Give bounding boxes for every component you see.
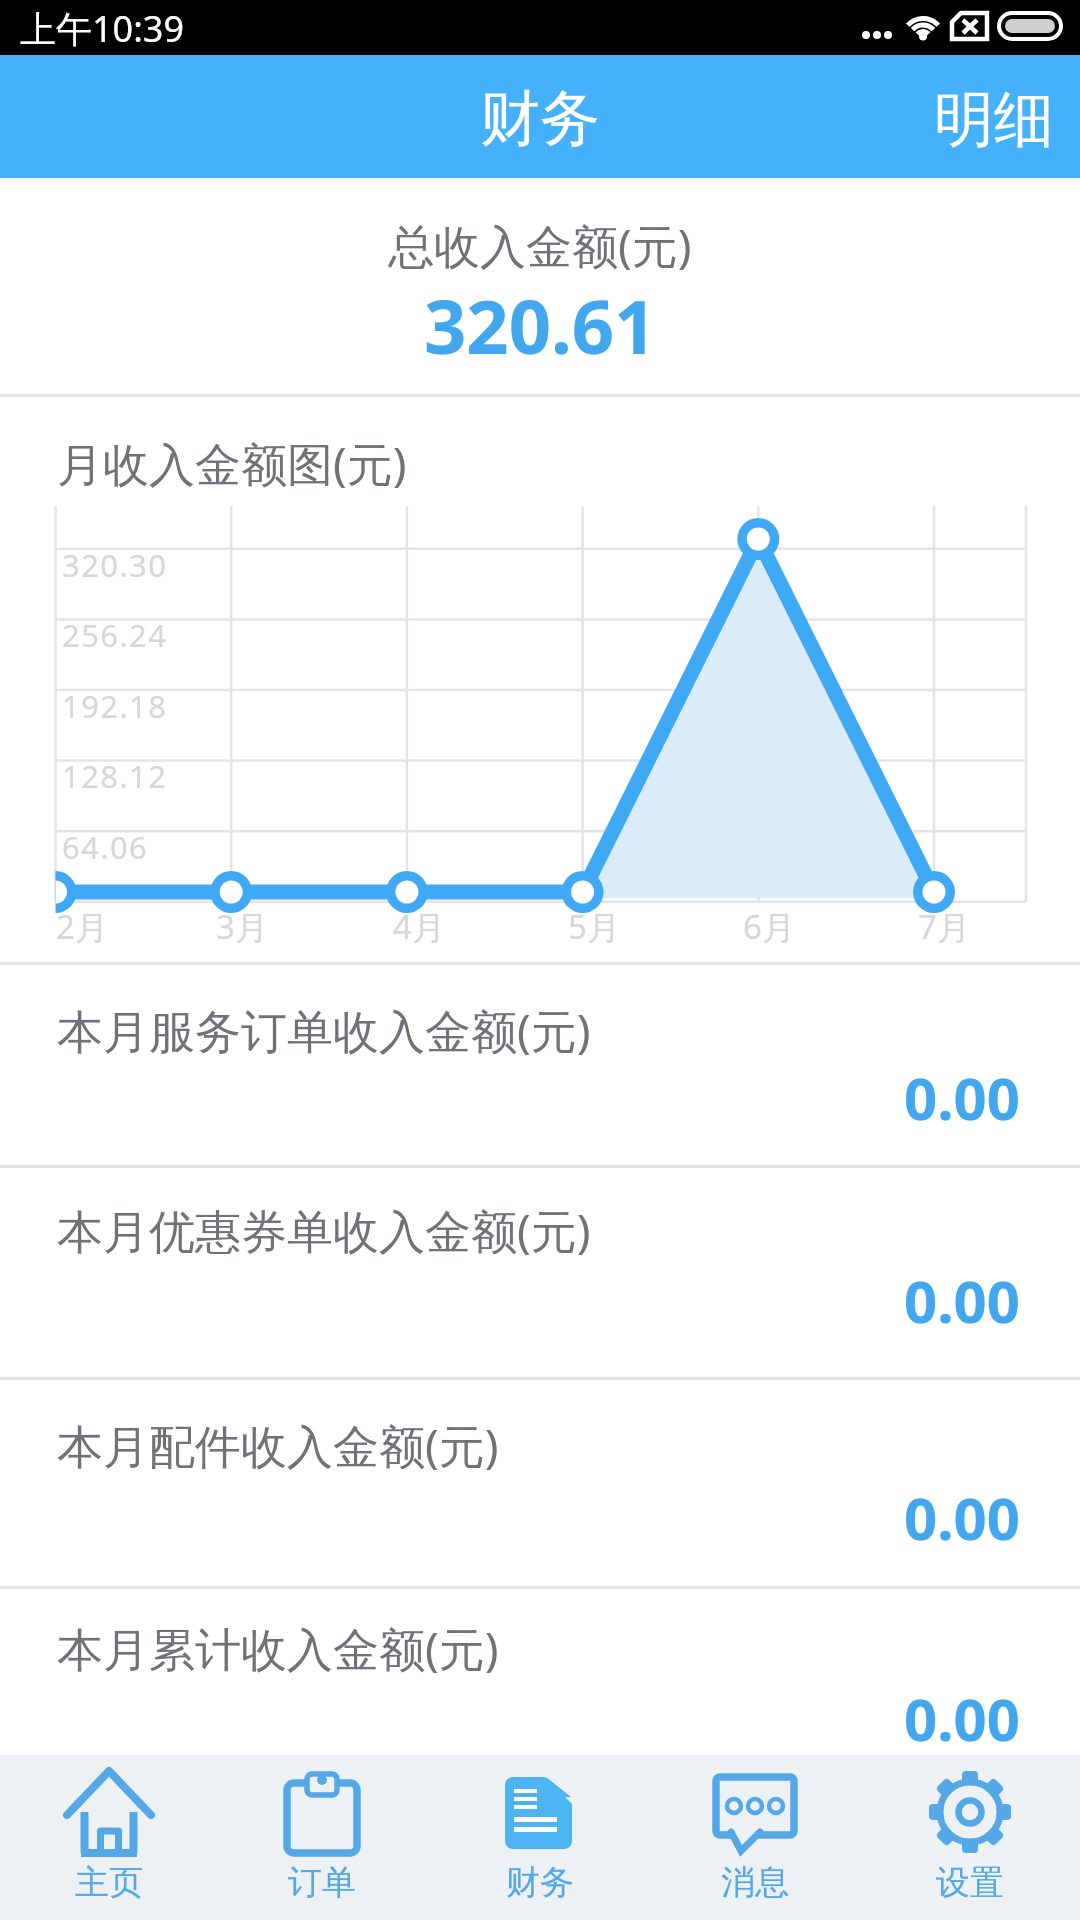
button[interactable] — [647, 1755, 863, 1920]
button[interactable] — [0, 1168, 1080, 1377]
staticText: 本月累计收入金额(元) — [57, 1617, 499, 1680]
staticText: 4月 — [393, 904, 445, 949]
staticText: 订单 — [288, 1861, 356, 1904]
staticText: 6月 — [743, 904, 795, 949]
staticText: 本月服务订单收入金额(元) — [57, 999, 591, 1062]
staticText: 320.30 — [62, 544, 168, 586]
button[interactable] — [862, 1755, 1078, 1920]
button[interactable] — [0, 1380, 1080, 1586]
staticText: 64.06 — [62, 826, 149, 868]
staticText: 256.24 — [62, 614, 168, 656]
button[interactable] — [0, 1589, 1080, 1755]
staticText: 0.00 — [904, 1478, 1020, 1557]
button[interactable] — [0, 965, 1080, 1165]
staticText: 上午10:39 — [20, 4, 185, 53]
staticText: 消息 — [721, 1861, 789, 1904]
staticText: 本月优惠券单收入金额(元) — [57, 1199, 591, 1262]
staticText: 192.18 — [62, 685, 168, 727]
staticText: 5月 — [568, 904, 620, 949]
button[interactable] — [432, 1755, 648, 1920]
staticText: 总收入金额(元) — [388, 214, 692, 277]
staticText: 月收入金额图(元) — [57, 432, 407, 495]
staticText: 明细 — [934, 82, 1054, 158]
staticText: 320.61 — [424, 275, 657, 375]
staticText: 3月 — [216, 904, 268, 949]
staticText: 设置 — [936, 1861, 1004, 1904]
staticText: 0.00 — [904, 1058, 1020, 1137]
staticText: 0.00 — [904, 1679, 1020, 1758]
staticText: 主页 — [75, 1861, 143, 1904]
staticText: 财务 — [506, 1861, 574, 1904]
staticText: 0.00 — [904, 1261, 1020, 1340]
staticText: 本月配件收入金额(元) — [57, 1414, 499, 1477]
staticText: 128.12 — [62, 755, 168, 797]
staticText: 7月 — [918, 904, 970, 949]
button[interactable] — [1, 1755, 217, 1920]
button[interactable]: 明细 — [0, 70, 1080, 170]
staticText: 2月 — [56, 904, 108, 949]
button[interactable] — [214, 1755, 430, 1920]
staticText: 财务 — [480, 81, 600, 157]
